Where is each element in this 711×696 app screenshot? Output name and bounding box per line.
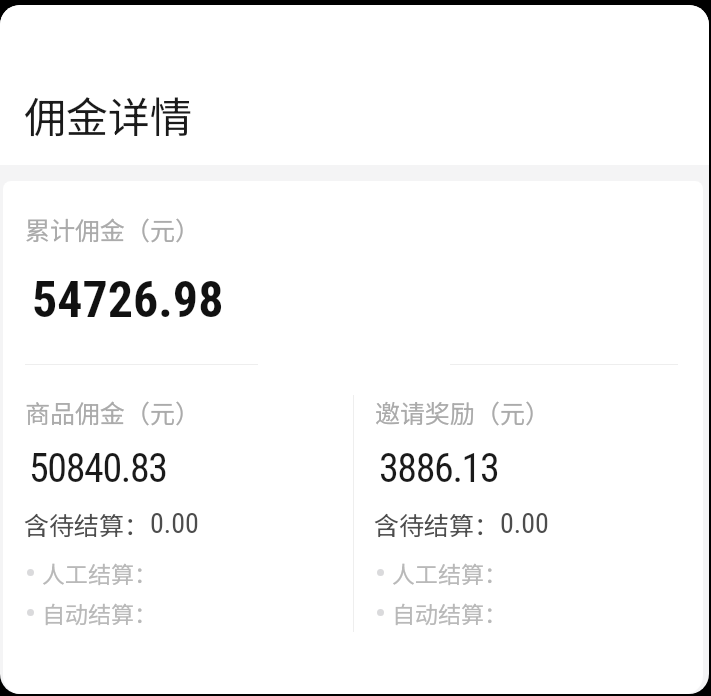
button[interactable] <box>17 377 337 637</box>
staticText: 累计佣金（元） <box>25 211 201 247</box>
staticText: 自动结算： <box>392 596 507 629</box>
staticText: 含待结算： <box>24 506 150 542</box>
staticText: 人工结算： <box>392 556 507 589</box>
staticText: 含待结算： <box>374 506 500 542</box>
button[interactable] <box>367 377 687 637</box>
staticText: 3886.13 <box>379 445 499 492</box>
staticText: 人工结算： <box>42 556 157 589</box>
staticText: 54726.98 <box>32 271 224 330</box>
staticText: 50840.83 <box>29 445 167 492</box>
staticText: 邀请奖励（元） <box>375 394 551 430</box>
staticText: 佣金详情 <box>24 84 193 145</box>
staticText: 0.00 <box>500 507 549 540</box>
staticText: 商品佣金（元） <box>25 394 201 430</box>
staticText: 自动结算： <box>42 596 157 629</box>
staticText: 0.00 <box>150 507 199 540</box>
